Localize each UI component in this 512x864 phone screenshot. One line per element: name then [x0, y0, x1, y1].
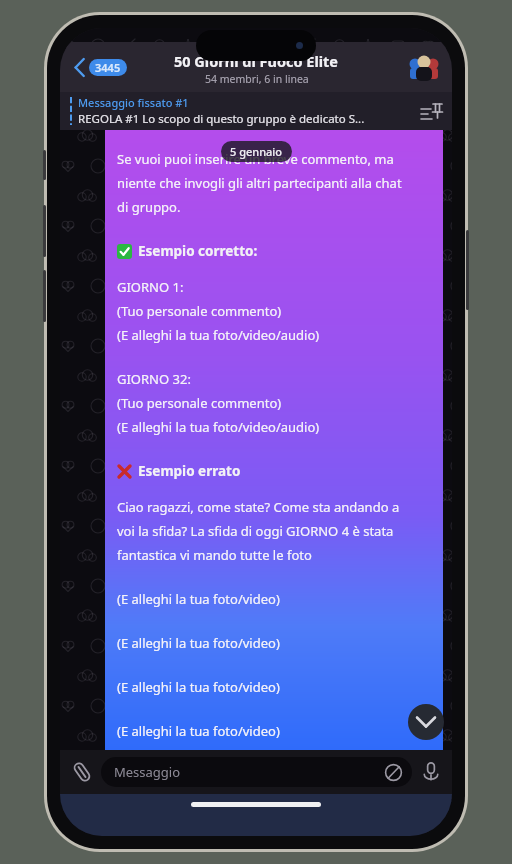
button[interactable]: Messaggio	[101, 757, 412, 787]
staticText: (E alleghi la tua foto/video)	[117, 634, 280, 652]
staticText: Ciao ragazzi, come state? Come sta andan…	[117, 498, 400, 516]
staticText: (E alleghi la tua foto/video)	[117, 722, 280, 740]
button[interactable]: Allega	[69, 759, 95, 785]
staticText: Se vuoi puoi inserire un breve commento,…	[117, 150, 394, 168]
button[interactable]: 5 gennaio	[221, 141, 292, 162]
staticText: (E alleghi la tua foto/video)	[117, 678, 280, 696]
staticText: Esempio corretto:	[138, 242, 258, 260]
staticText: GIORNO 1:	[117, 278, 184, 296]
button[interactable]: Elenco messaggi fissati	[420, 101, 440, 121]
staticText: 3445	[95, 60, 121, 75]
button[interactable]: Indietro	[74, 58, 127, 77]
staticText: 5 gennaio	[230, 144, 283, 159]
staticText: REGOLA #1 Lo scopo di questo gruppo è de…	[78, 111, 365, 127]
button[interactable]: Scorri in basso	[408, 704, 444, 740]
staticText: 50 Giorni di Fuoco Élite	[174, 51, 339, 71]
button[interactable]: Messaggio vocale	[419, 760, 443, 784]
button[interactable]: Autodistruzione	[384, 763, 403, 782]
staticText: (Tuo personale commento)	[117, 394, 282, 412]
staticText: (E alleghi la tua foto/video/audio)	[117, 326, 320, 344]
button[interactable]: Messaggio fissato #1	[60, 92, 452, 130]
staticText: Messaggio	[114, 763, 181, 781]
staticText: (E alleghi la tua foto/video)	[117, 590, 280, 608]
staticText: Esempio errato	[138, 462, 241, 480]
staticText: (E alleghi la tua foto/video/audio)	[117, 418, 320, 436]
staticText: GIORNO 32:	[117, 370, 191, 388]
staticText: niente che invogli gli altri partecipant…	[117, 174, 402, 192]
button[interactable]: Se vuoi puoi inserire un breve commento,…	[105, 130, 443, 750]
staticText: voi la sfida? La sfida di oggi GIORNO 4 …	[117, 522, 394, 540]
staticText: (Tuo personale commento)	[117, 302, 282, 320]
staticText: 54 membri, 6 in linea	[205, 72, 309, 86]
staticText: Messaggio fissato #1	[78, 95, 189, 110]
button[interactable]: Informazioni gruppo	[408, 51, 440, 83]
staticText: di gruppo.	[117, 198, 181, 216]
staticText: fantastica vi mando tutte le foto	[117, 546, 312, 564]
